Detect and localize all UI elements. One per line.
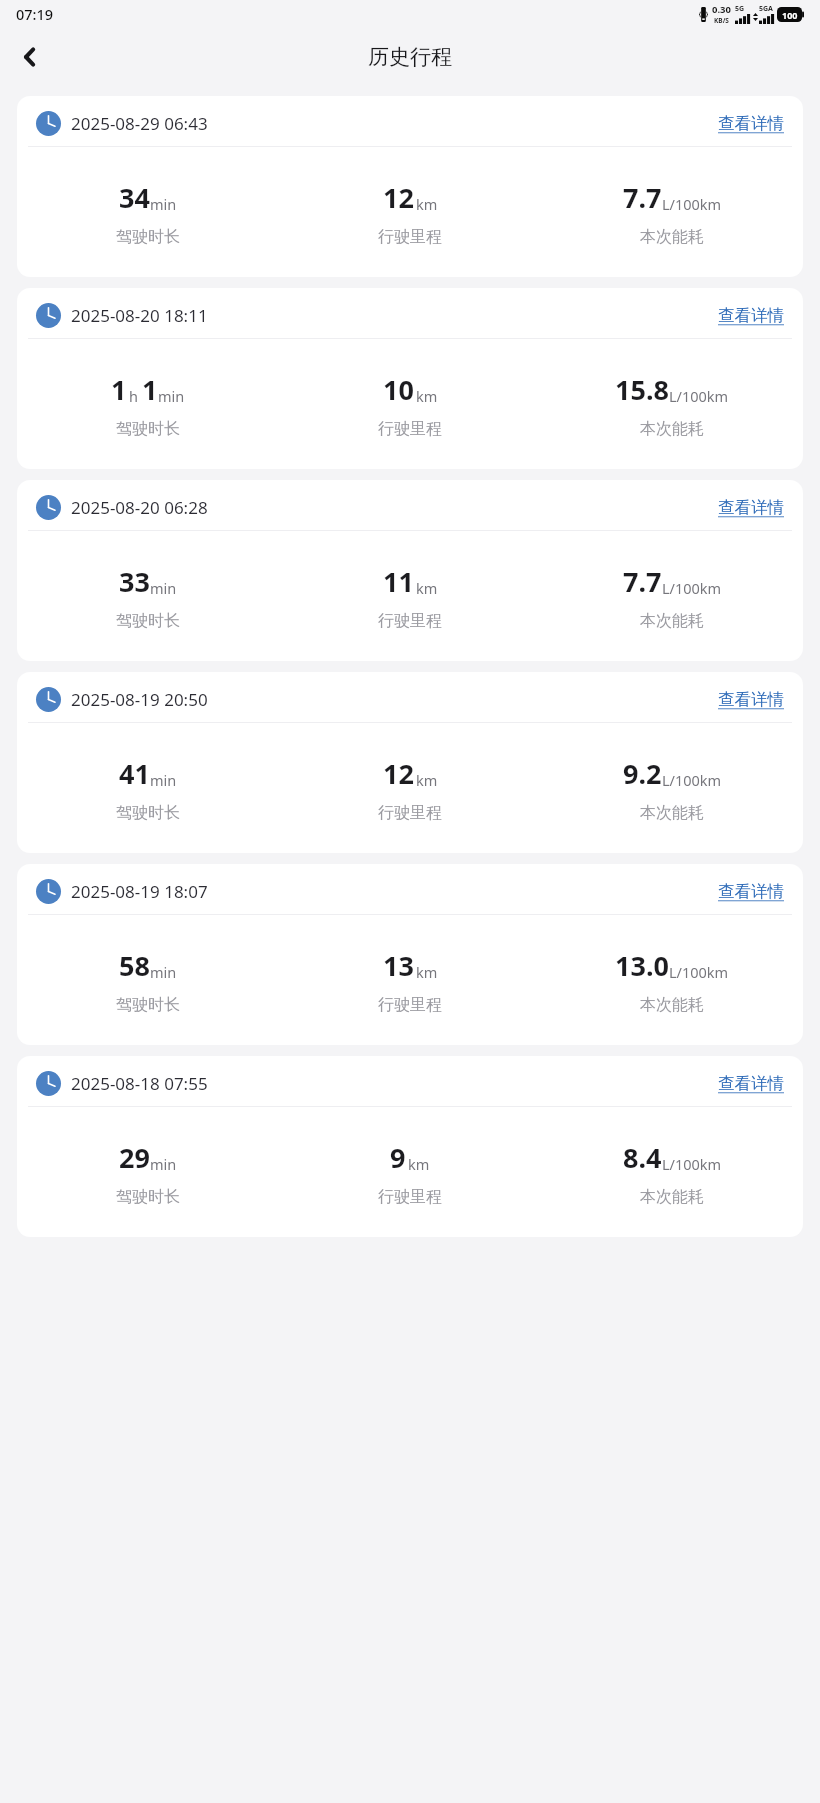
staticText: 12 [383, 179, 414, 216]
staticText: 15.8 [615, 371, 669, 408]
staticText: 本次能耗 [640, 227, 704, 247]
staticText: km [416, 578, 438, 598]
staticText: 查看详情 [718, 1073, 784, 1094]
staticText: 8.4 [623, 1139, 662, 1176]
staticText: 查看详情 [718, 881, 784, 902]
staticText: 9 [390, 1139, 406, 1176]
staticText: 7.7 [623, 563, 662, 600]
staticText: 查看详情 [718, 689, 784, 710]
staticText: 33 [119, 563, 150, 600]
staticText: 1 [111, 371, 127, 408]
staticText: 本次能耗 [640, 1187, 704, 1207]
button[interactable]: 2025-08-29 06:43 [17, 96, 803, 277]
button[interactable]: 查看详情 [718, 113, 784, 134]
staticText: 行驶里程 [378, 995, 442, 1015]
staticText: min [150, 194, 177, 214]
button[interactable]: 查看详情 [718, 305, 784, 326]
staticText: km [416, 770, 438, 790]
staticText: 41 [119, 755, 150, 792]
staticText: 本次能耗 [640, 419, 704, 439]
staticText: 9.2 [623, 755, 662, 792]
staticText: 2025-08-29 06:43 [71, 112, 208, 135]
button[interactable]: 2025-08-20 18:11 [17, 288, 803, 469]
staticText: 2025-08-20 18:11 [71, 304, 208, 327]
staticText: min [158, 386, 185, 406]
staticText: min [150, 1154, 177, 1174]
button[interactable]: 查看详情 [718, 497, 784, 518]
staticText: L/100km [662, 770, 722, 790]
staticText: L/100km [669, 962, 729, 982]
staticText: 07:19 [16, 4, 54, 24]
staticText: 2025-08-18 07:55 [71, 1072, 208, 1095]
button[interactable]: Back [6, 33, 54, 81]
staticText: 驾驶时长 [116, 803, 180, 823]
staticText: 查看详情 [718, 497, 784, 518]
staticText: 12 [383, 755, 414, 792]
button[interactable]: 2025-08-18 07:55 [17, 1056, 803, 1237]
staticText: 7.7 [623, 179, 662, 216]
staticText: L/100km [662, 578, 722, 598]
button[interactable]: 2025-08-20 06:28 [17, 480, 803, 661]
staticText: 查看详情 [718, 113, 784, 134]
staticText: 2025-08-19 18:07 [71, 880, 208, 903]
staticText: KB/S [714, 16, 729, 25]
staticText: km [416, 962, 438, 982]
staticText: 0.30 [712, 3, 731, 16]
staticText: km [416, 194, 438, 214]
staticText: 驾驶时长 [116, 227, 180, 247]
staticText: L/100km [662, 1154, 722, 1174]
staticText: 13.0 [615, 947, 669, 984]
staticText: 本次能耗 [640, 803, 704, 823]
staticText: 34 [119, 179, 150, 216]
staticText: 驾驶时长 [116, 419, 180, 439]
staticText: min [150, 962, 177, 982]
staticText: min [150, 770, 177, 790]
staticText: 2025-08-20 06:28 [71, 496, 208, 519]
staticText: 58 [119, 947, 150, 984]
staticText: 驾驶时长 [116, 1187, 180, 1207]
staticText: L/100km [662, 194, 722, 214]
staticText: 行驶里程 [378, 419, 442, 439]
staticText: 1 [142, 371, 158, 408]
staticText: 本次能耗 [640, 611, 704, 631]
staticText: 历史行程 [368, 44, 452, 70]
staticText: 本次能耗 [640, 995, 704, 1015]
staticText: 100 [782, 9, 798, 21]
staticText: 行驶里程 [378, 803, 442, 823]
staticText: L/100km [669, 386, 729, 406]
staticText: 行驶里程 [378, 227, 442, 247]
staticText: h [129, 386, 138, 406]
button[interactable]: 查看详情 [718, 1073, 784, 1094]
staticText: 查看详情 [718, 305, 784, 326]
staticText: 5GA [759, 4, 773, 14]
staticText: 驾驶时长 [116, 611, 180, 631]
button[interactable]: 查看详情 [718, 689, 784, 710]
staticText: 2025-08-19 20:50 [71, 688, 208, 711]
staticText: 29 [119, 1139, 150, 1176]
button[interactable]: 查看详情 [718, 881, 784, 902]
button[interactable]: 2025-08-19 20:50 [17, 672, 803, 853]
staticText: 5G [735, 4, 745, 14]
staticText: 行驶里程 [378, 611, 442, 631]
staticText: 10 [383, 371, 414, 408]
staticText: 11 [383, 563, 414, 600]
staticText: km [408, 1154, 430, 1174]
staticText: km [416, 386, 438, 406]
staticText: 行驶里程 [378, 1187, 442, 1207]
staticText: 驾驶时长 [116, 995, 180, 1015]
button[interactable]: 2025-08-19 18:07 [17, 864, 803, 1045]
staticText: min [150, 578, 177, 598]
staticText: 13 [383, 947, 414, 984]
